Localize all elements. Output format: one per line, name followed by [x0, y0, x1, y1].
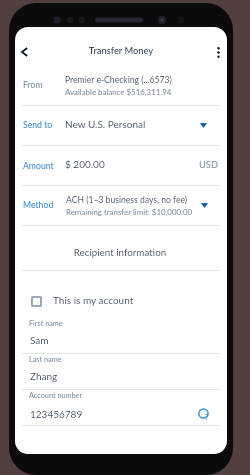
staticText: ACH (1–3 business days, no fee) — [66, 195, 188, 205]
staticText: USD — [199, 159, 218, 170]
staticText: Last name — [29, 355, 62, 364]
staticText: Available balance $516,311.94 — [65, 87, 172, 96]
button[interactable] — [15, 105, 227, 145]
staticText: Premier e-Checking (...6573) — [65, 75, 172, 85]
button[interactable]: Help — [194, 404, 212, 422]
button[interactable] — [15, 225, 227, 270]
staticText: Account number — [29, 391, 83, 400]
staticText: First name — [29, 319, 63, 328]
button[interactable] — [15, 353, 227, 389]
staticText: Recipient information — [30, 246, 210, 258]
staticText: Sam — [30, 334, 49, 346]
button[interactable]: Back — [15, 41, 35, 63]
staticText: Send to — [23, 119, 53, 129]
button[interactable]: More options — [207, 41, 227, 63]
button[interactable] — [15, 315, 227, 351]
staticText: Remaining transfer limit: $10,000.00 — [66, 207, 193, 216]
button[interactable] — [15, 389, 227, 425]
button[interactable] — [15, 145, 227, 185]
staticText: From — [23, 79, 43, 89]
staticText: Method — [23, 199, 54, 209]
staticText: Zhang — [30, 370, 58, 382]
staticText: Amount — [23, 160, 54, 170]
button[interactable]: Open dropdown — [195, 196, 213, 214]
button[interactable]: Open dropdown — [194, 116, 212, 134]
button[interactable] — [15, 270, 227, 315]
button[interactable] — [15, 185, 227, 225]
staticText: This is my account — [53, 294, 134, 306]
button[interactable] — [15, 62, 227, 105]
staticText: Transfer Money — [31, 45, 211, 56]
staticText: New U.S. Personal — [65, 118, 146, 130]
staticText: $ 200.00 — [65, 158, 105, 170]
staticText: ? — [205, 413, 209, 422]
staticText: 123456789 — [30, 408, 83, 420]
